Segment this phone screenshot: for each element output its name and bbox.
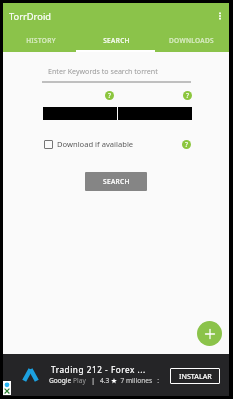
staticText: INSTALAR (179, 371, 212, 381)
staticText: SEARCH (103, 36, 130, 45)
button[interactable]: Add (197, 321, 222, 346)
button[interactable]: Help (182, 140, 191, 149)
staticText: DOWNLOADS (169, 36, 214, 45)
staticText: Download if available (57, 139, 134, 149)
button[interactable]: HISTORY (3, 29, 79, 52)
button[interactable]: DOWNLOADS (154, 29, 229, 52)
staticText: 7 millones : (117, 376, 160, 385)
staticText: Play (73, 376, 86, 385)
button[interactable]: Help (183, 91, 192, 100)
button[interactable]: SEARCH (85, 172, 147, 191)
staticText: ? (185, 140, 188, 149)
button[interactable]: Download if available (44, 139, 134, 149)
button[interactable]: Ad choices (3, 381, 11, 395)
button[interactable]: SEARCH (79, 29, 154, 52)
staticText: ? (108, 91, 111, 100)
staticText: SEARCH (103, 177, 130, 186)
staticText: Google (49, 376, 73, 385)
staticText: Enter Keywords to search torrent (48, 66, 158, 76)
staticText: TorrDroid (9, 10, 52, 23)
staticText: ? (186, 91, 189, 100)
staticText: HISTORY (26, 36, 56, 45)
button[interactable]: INSTALAR (170, 368, 220, 384)
staticText: Trading 212 - Forex ... (51, 364, 146, 375)
button[interactable]: More options (212, 8, 228, 24)
staticText: | 4.3 (86, 376, 111, 385)
button[interactable]: Help (105, 91, 114, 100)
